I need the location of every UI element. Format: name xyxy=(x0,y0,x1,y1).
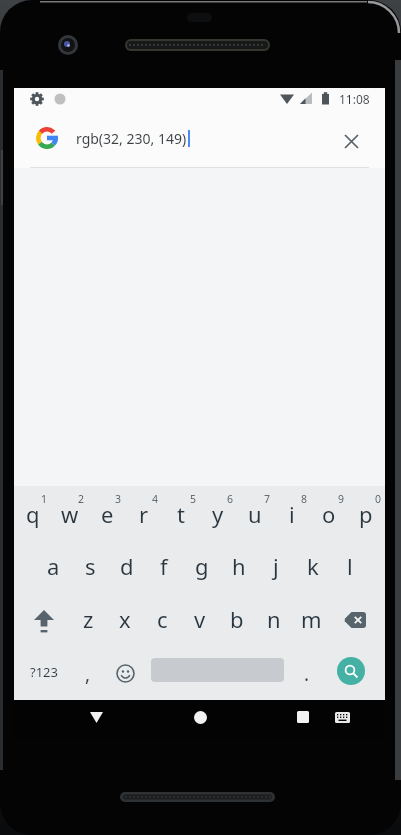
staticText: 6 xyxy=(227,492,234,506)
button[interactable] xyxy=(330,705,354,729)
button[interactable]: a xyxy=(33,546,73,586)
staticText: g xyxy=(195,551,209,581)
staticText: o xyxy=(322,499,336,529)
staticText: c xyxy=(157,604,168,634)
button[interactable]: ?123 xyxy=(24,652,64,692)
staticText: j xyxy=(273,551,279,581)
staticText: rgb(32, 230, 149) xyxy=(76,129,187,148)
button[interactable] xyxy=(22,601,66,641)
button[interactable] xyxy=(82,703,110,731)
button[interactable] xyxy=(186,703,214,731)
button[interactable]: e xyxy=(87,494,127,534)
staticText: ?123 xyxy=(30,663,58,681)
staticText: m xyxy=(301,604,322,634)
button[interactable] xyxy=(335,125,367,157)
staticText: 1 xyxy=(41,492,48,506)
button[interactable]: t xyxy=(161,494,201,534)
button[interactable]: b xyxy=(217,599,257,639)
button[interactable]: o xyxy=(309,494,349,534)
staticText: 9 xyxy=(338,492,345,506)
staticText: 8 xyxy=(301,492,308,506)
button[interactable] xyxy=(337,657,365,685)
button[interactable]: , xyxy=(68,654,108,694)
button[interactable]: rgb(32, 230, 149) xyxy=(14,110,385,167)
staticText: l xyxy=(347,551,353,581)
staticText: . xyxy=(304,661,310,687)
staticText: 3 xyxy=(115,492,122,506)
button[interactable]: r xyxy=(124,494,164,534)
button[interactable]: j xyxy=(256,546,296,586)
button[interactable]: v xyxy=(180,599,220,639)
staticText: v xyxy=(194,604,206,634)
staticText: k xyxy=(307,551,319,581)
button[interactable]: n xyxy=(254,599,294,639)
staticText: 4 xyxy=(152,492,159,506)
button[interactable]: p xyxy=(346,494,386,534)
button[interactable] xyxy=(289,703,317,731)
button[interactable]: z xyxy=(68,599,108,639)
button[interactable]: l xyxy=(330,546,370,586)
button[interactable] xyxy=(333,600,377,640)
button[interactable]: q xyxy=(13,494,53,534)
button[interactable]: w xyxy=(50,494,90,534)
staticText: d xyxy=(120,551,134,581)
button[interactable]: f xyxy=(144,546,184,586)
staticText: r xyxy=(139,499,149,529)
staticText: , xyxy=(85,661,91,687)
staticText: a xyxy=(47,551,60,581)
button[interactable]: y xyxy=(198,494,238,534)
button[interactable]: k xyxy=(293,546,333,586)
staticText: q xyxy=(26,499,40,529)
staticText: 2 xyxy=(78,492,85,506)
staticText: u xyxy=(248,499,262,529)
button[interactable]: g xyxy=(182,546,222,586)
staticText: w xyxy=(61,499,79,529)
staticText: i xyxy=(289,499,295,529)
staticText: z xyxy=(83,604,94,634)
staticText: n xyxy=(267,604,281,634)
button[interactable] xyxy=(111,653,139,693)
button[interactable]: m xyxy=(291,599,331,639)
button[interactable]: u xyxy=(235,494,275,534)
staticText: f xyxy=(160,551,168,581)
button[interactable]: d xyxy=(107,546,147,586)
button[interactable]: . xyxy=(287,654,327,694)
staticText: b xyxy=(230,604,244,634)
staticText: y xyxy=(212,499,224,529)
staticText: x xyxy=(119,604,131,634)
button[interactable]: s xyxy=(70,546,110,586)
staticText: 5 xyxy=(190,492,197,506)
staticText: 0 xyxy=(375,492,382,506)
button[interactable]: c xyxy=(142,599,182,639)
staticText: t xyxy=(177,499,185,529)
staticText: 11:08 xyxy=(339,91,370,107)
button[interactable]: x xyxy=(105,599,145,639)
button[interactable]: i xyxy=(272,494,312,534)
staticText: p xyxy=(359,499,373,529)
button[interactable]: h xyxy=(219,546,259,586)
staticText: e xyxy=(101,499,114,529)
staticText: h xyxy=(232,551,246,581)
staticText: 7 xyxy=(264,492,271,506)
staticText: s xyxy=(85,551,96,581)
